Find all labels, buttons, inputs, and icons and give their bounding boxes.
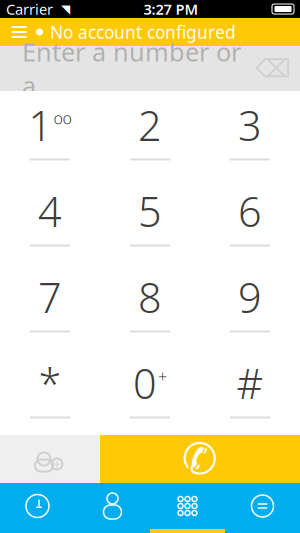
button[interactable]: * (0, 349, 100, 435)
button[interactable]: 0 (100, 349, 200, 435)
button[interactable]: 5 (100, 177, 200, 263)
staticText: ✆ (182, 435, 218, 483)
staticText: + (158, 365, 167, 387)
staticText: ⌫ (255, 54, 291, 83)
staticText: 7 (38, 270, 62, 324)
button[interactable]: Contacts (75, 483, 150, 533)
staticText: 4 (38, 184, 62, 238)
button[interactable]: Messages (225, 483, 300, 533)
staticText: 3:27 PM (143, 0, 198, 19)
staticText: 6 (238, 184, 262, 238)
staticText: 0 (133, 356, 157, 410)
staticText: 1 (28, 98, 52, 152)
button[interactable]: 1 (0, 91, 100, 177)
staticText: Enter a number or a… (22, 35, 241, 102)
staticText: ◥ (53, 2, 70, 16)
staticText: 5 (138, 184, 162, 238)
staticText: * (38, 356, 61, 410)
button[interactable]: 4 (0, 177, 100, 263)
button[interactable]: Delete (256, 55, 290, 81)
button[interactable]: Recents (0, 483, 75, 533)
button[interactable]: 9 (200, 263, 300, 349)
staticText: 8 (138, 270, 162, 324)
button[interactable]: 7 (0, 263, 100, 349)
button[interactable]: 3 (200, 91, 300, 177)
button[interactable]: # (200, 349, 300, 435)
staticText: # (236, 356, 263, 410)
button[interactable]: 2 (100, 91, 200, 177)
staticText: 2 (138, 98, 162, 152)
button[interactable]: 8 (100, 263, 200, 349)
button[interactable]: Add contact (0, 435, 100, 483)
staticText: No account configured (50, 20, 236, 43)
button[interactable]: Menu (2, 18, 36, 46)
button[interactable]: Keypad (150, 483, 225, 533)
button[interactable]: Call (100, 435, 300, 483)
staticText: Carrier (6, 0, 53, 19)
button[interactable]: 6 (200, 177, 300, 263)
staticText: oo (53, 107, 71, 129)
staticText: 3 (238, 98, 262, 152)
staticText: + (53, 456, 60, 472)
staticText: 9 (238, 270, 262, 324)
